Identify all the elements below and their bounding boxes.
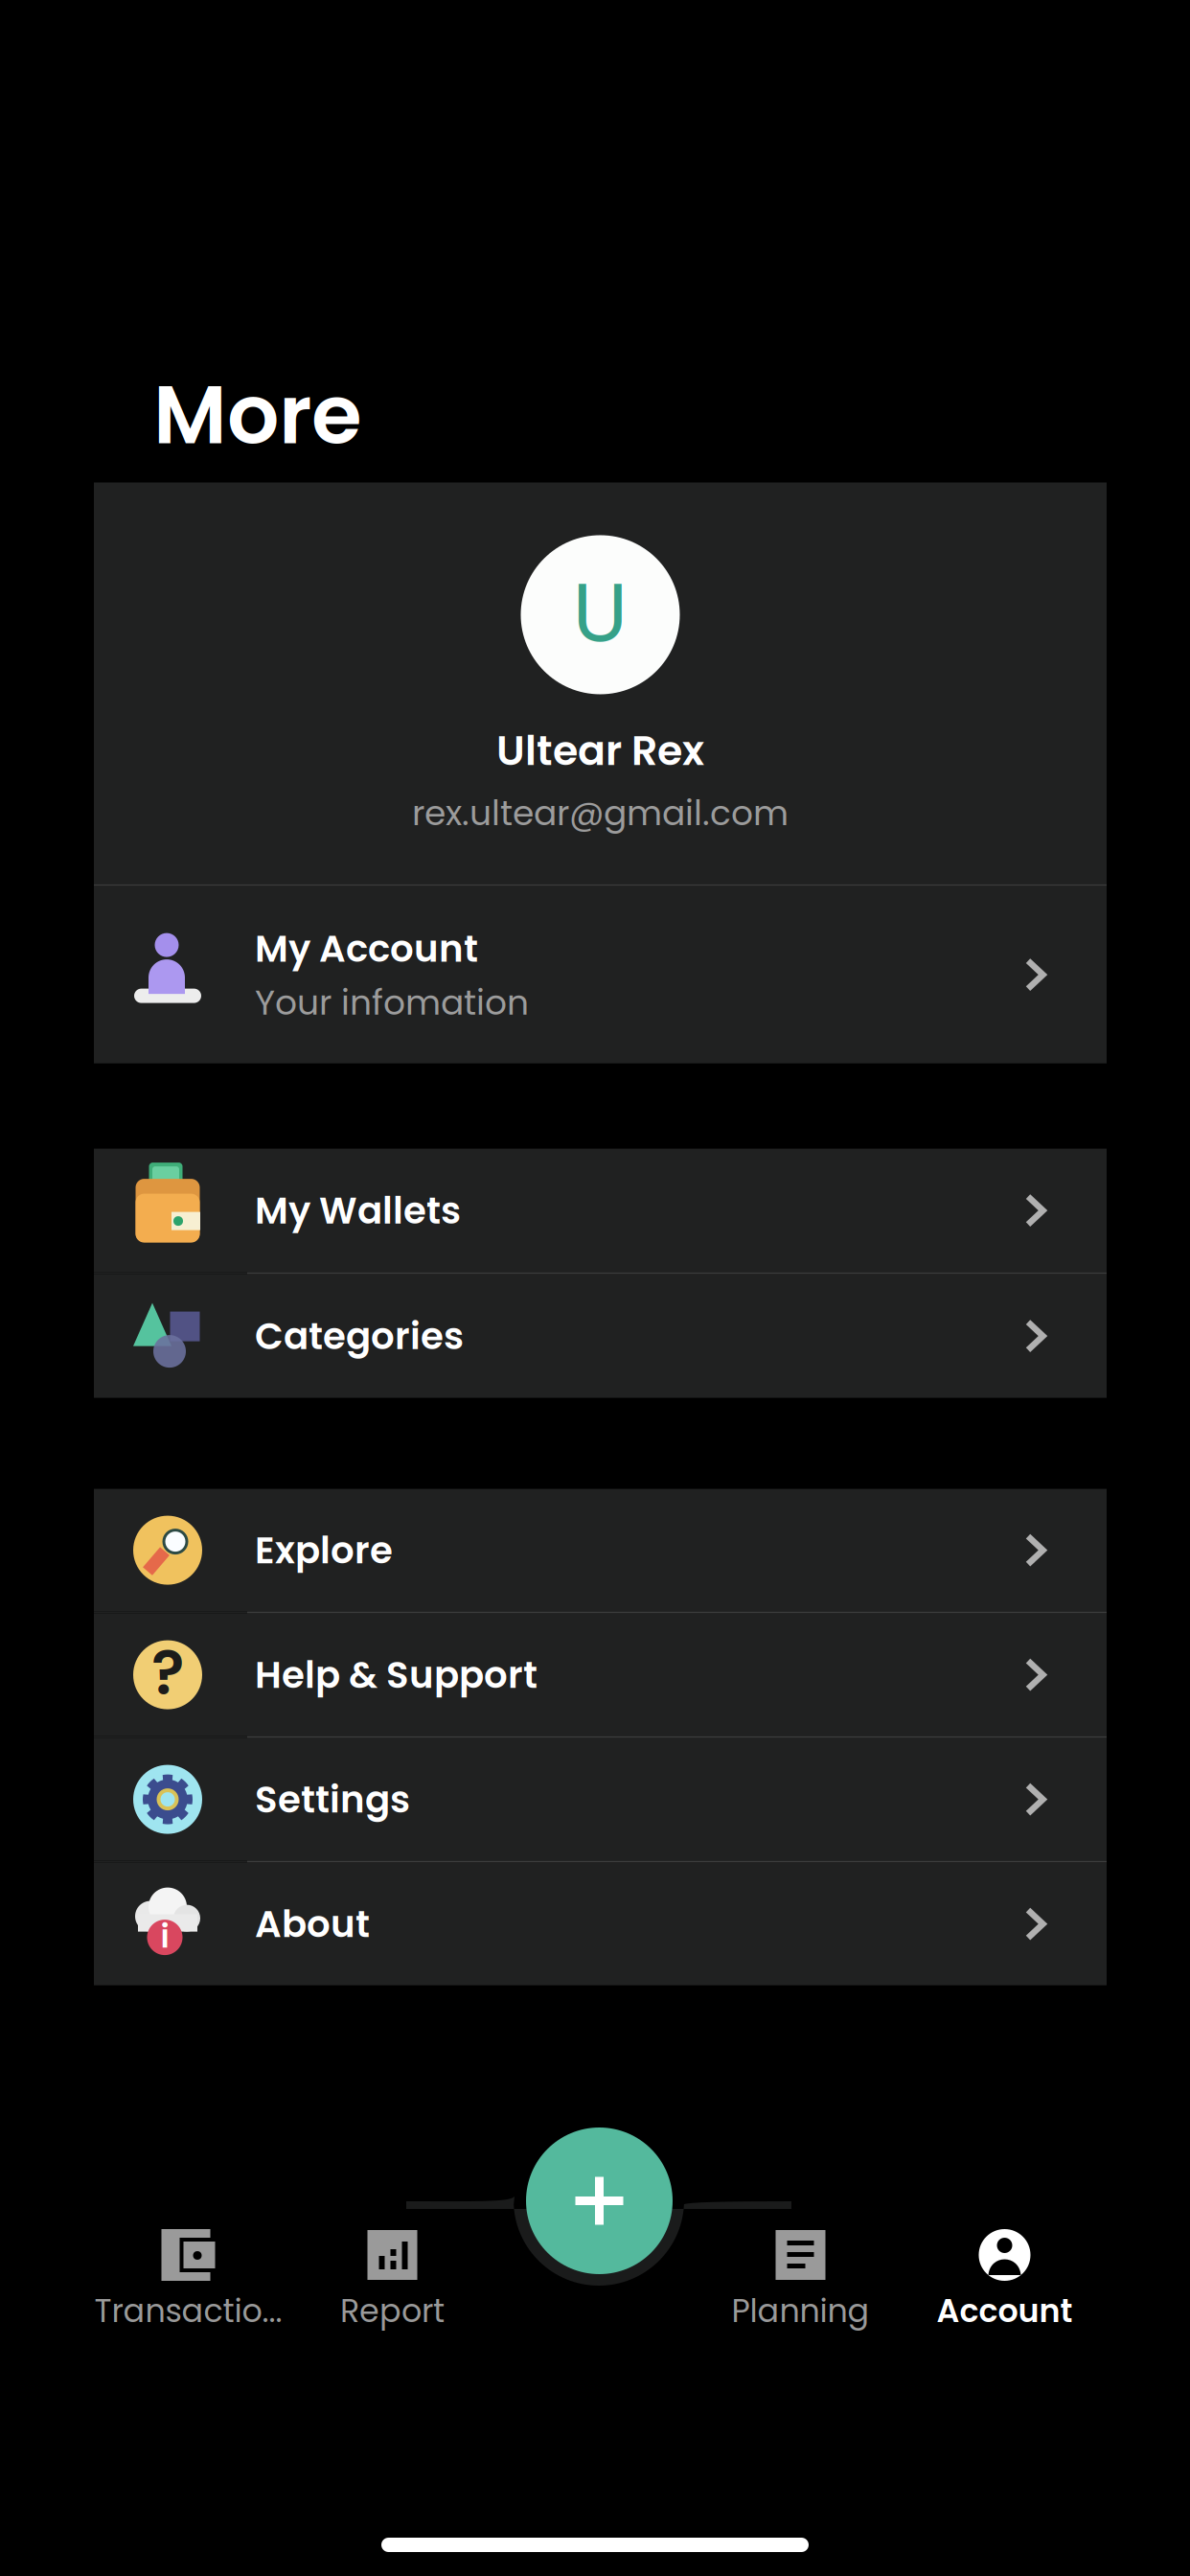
staticText: More	[153, 357, 362, 472]
staticText: i	[160, 1914, 169, 1959]
staticText: About	[255, 1898, 370, 1950]
button[interactable]: Add transaction	[526, 2127, 673, 2274]
staticText: Settings	[255, 1773, 410, 1825]
button[interactable]: Planning	[698, 2229, 903, 2333]
staticText: Your infomation	[255, 978, 529, 1027]
staticText: Account	[937, 2288, 1073, 2333]
staticText: ?	[151, 1630, 184, 1716]
staticText: Planning	[732, 2288, 870, 2333]
button[interactable]: Account	[903, 2229, 1107, 2333]
staticText: Help & Support	[255, 1649, 538, 1701]
button[interactable]: Explore	[94, 1489, 1107, 1612]
button[interactable]: Transactio...	[86, 2229, 290, 2333]
staticText: My Account	[255, 923, 478, 975]
staticText: Transactio...	[94, 2288, 282, 2333]
button[interactable]: Report	[290, 2229, 494, 2333]
staticText: Report	[340, 2288, 445, 2333]
button[interactable]: Settings	[94, 1738, 1107, 1861]
button[interactable]: My Wallets	[94, 1149, 1107, 1272]
button[interactable]: i	[94, 1863, 1107, 1985]
staticText: Explore	[255, 1524, 393, 1576]
staticText: U	[572, 556, 628, 670]
button[interactable]: ?	[94, 1613, 1107, 1736]
button[interactable]: Categories	[94, 1274, 1107, 1398]
staticText: Ultear Rex	[496, 722, 704, 779]
staticText: Categories	[255, 1310, 464, 1362]
staticText: rex.ultear@gmail.com	[412, 789, 789, 837]
button[interactable]: My Account	[94, 886, 1107, 1063]
staticText: My Wallets	[255, 1184, 461, 1236]
